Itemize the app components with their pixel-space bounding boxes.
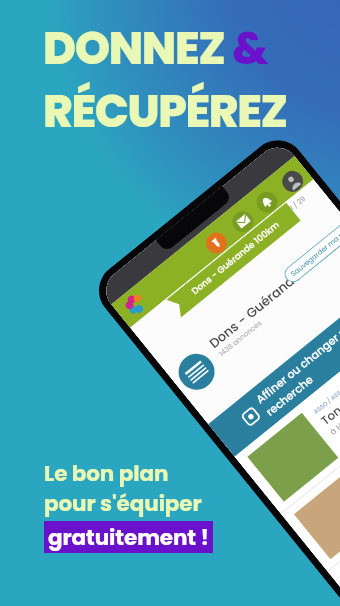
staticText: pour s'équiper: [44, 488, 202, 518]
staticText: Dons - Guérande 100km: [205, 238, 340, 352]
staticText: à Heric: [328, 411, 340, 437]
staticText: Page 1 / 29: [272, 194, 308, 225]
staticText: Dons - Guérande 100km: [189, 219, 283, 298]
staticText: Tondeuse: [317, 378, 340, 429]
staticText: Affiner ou changer ma recherche: [252, 280, 340, 420]
staticText: Sauvegarder ma recherche: [289, 223, 340, 279]
staticText: ASSO / ASSOCIATION: [312, 370, 340, 416]
staticText: RÉCUPÉREZ: [43, 80, 287, 143]
staticText: 1438 annonces: [217, 318, 264, 359]
staticText: DONNEZ: [43, 17, 232, 80]
staticText: gratuitement !: [48, 522, 209, 552]
staticText: Le bon plan: [44, 458, 169, 488]
staticText: &: [232, 17, 268, 80]
